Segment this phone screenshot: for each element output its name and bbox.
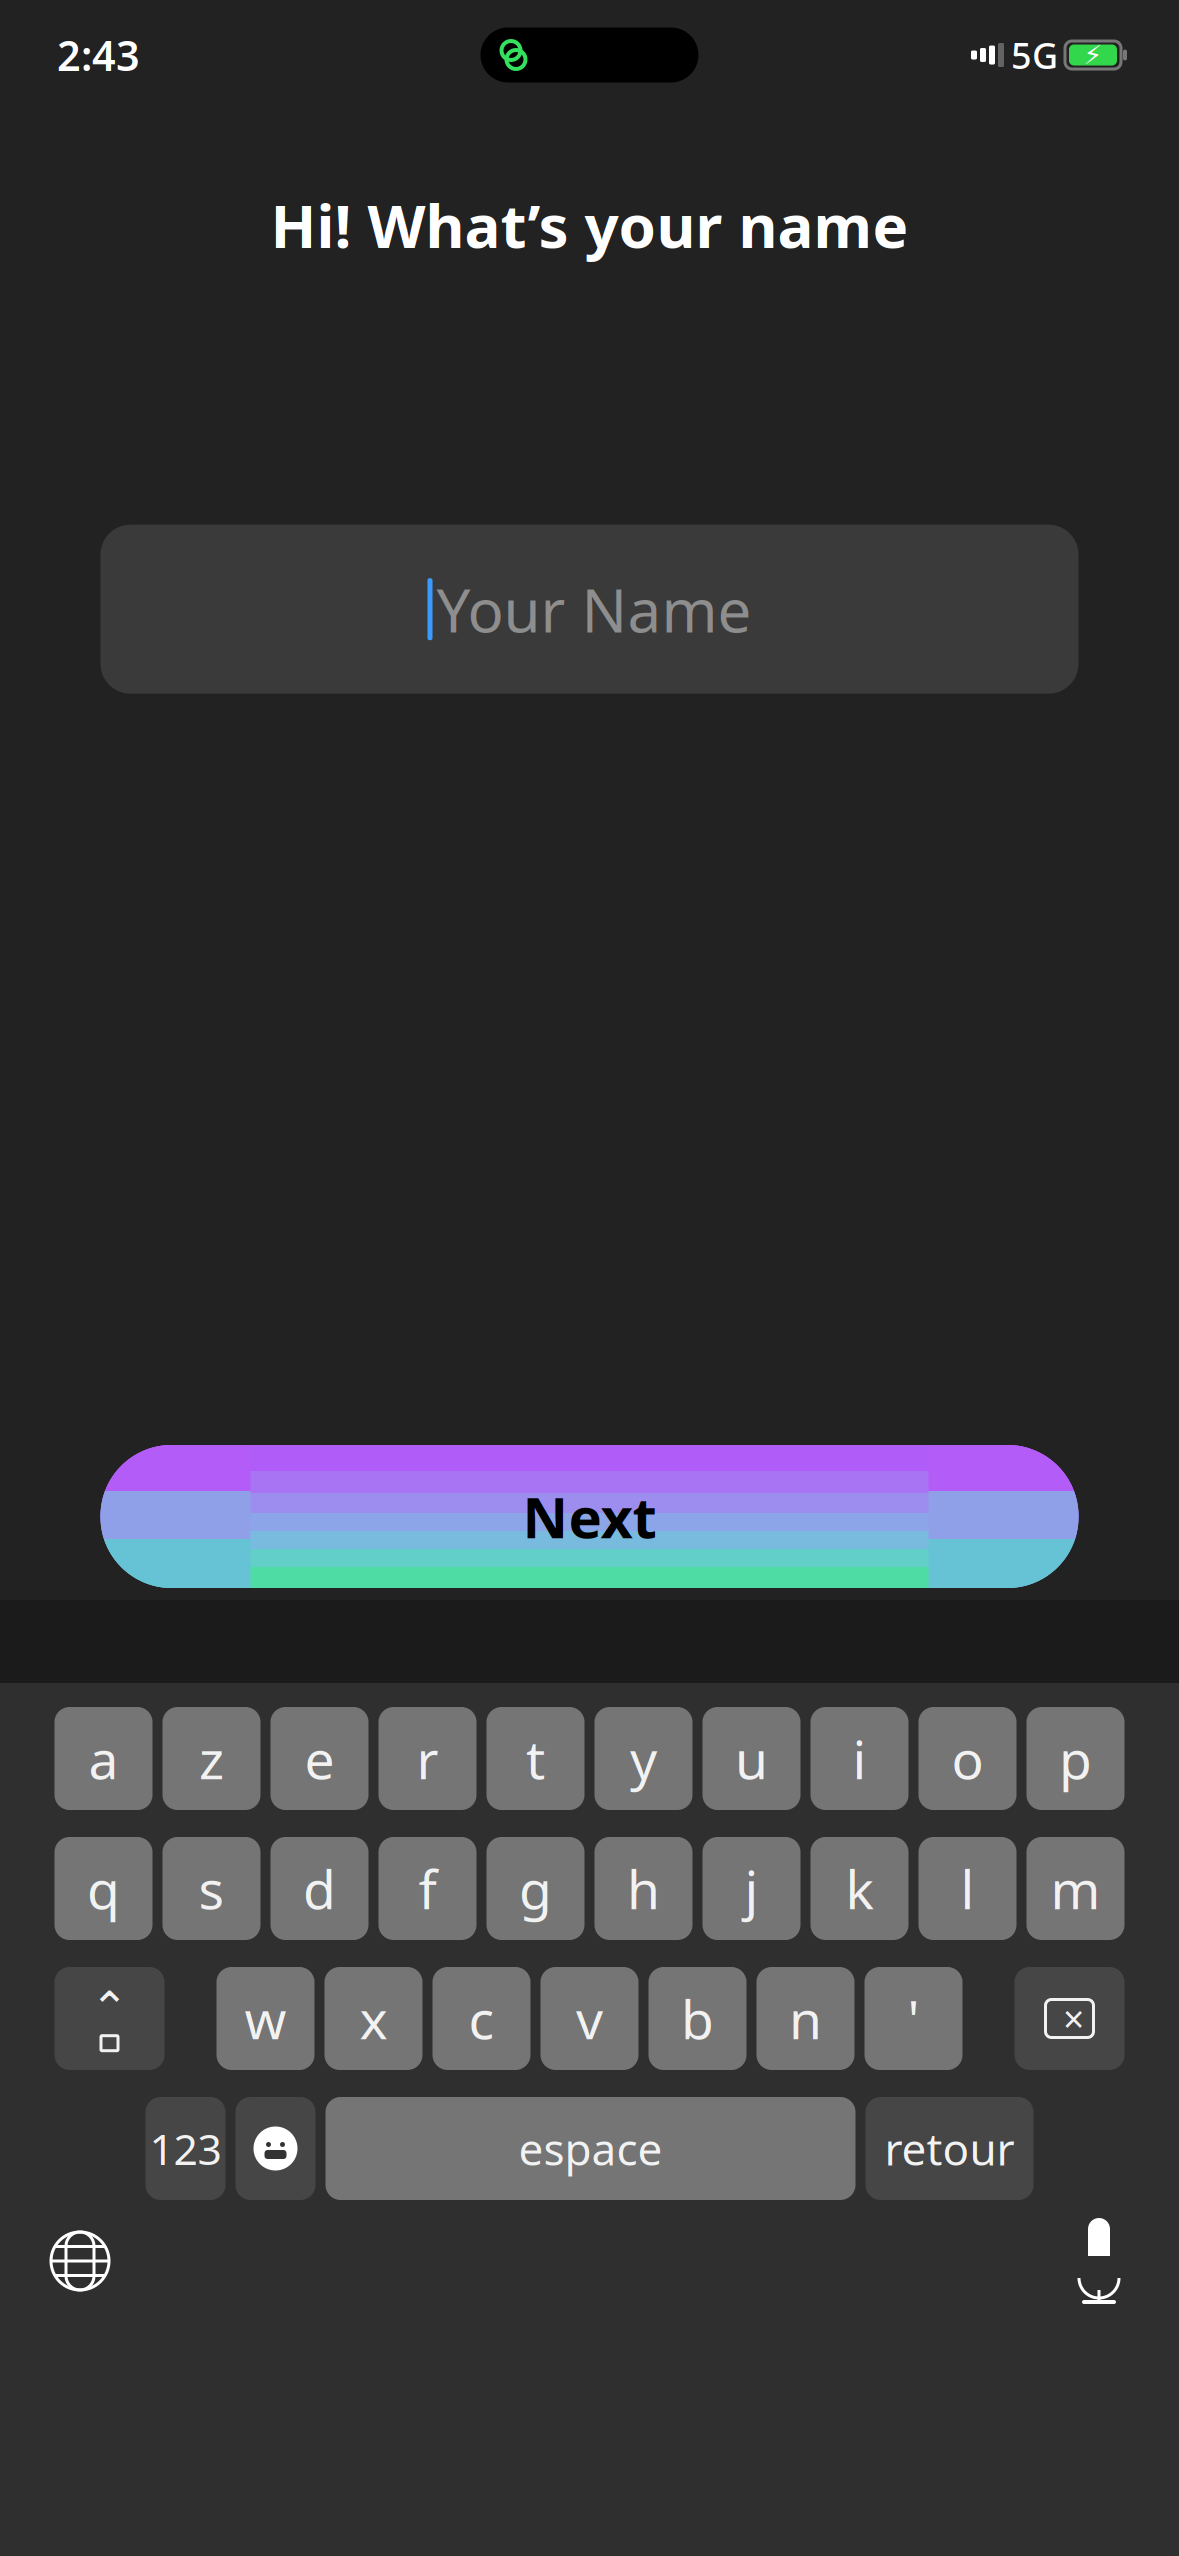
button[interactable]: n: [756, 1967, 854, 2070]
staticText: 2:43: [57, 28, 140, 82]
button[interactable]: t: [486, 1707, 584, 1810]
staticText: i: [852, 1723, 866, 1794]
staticText: retour: [884, 2119, 1014, 2178]
staticText: m: [1050, 1853, 1100, 1924]
button[interactable]: d: [270, 1837, 368, 1940]
staticText: e: [304, 1723, 334, 1794]
button[interactable]: p: [1026, 1707, 1124, 1810]
button[interactable]: z: [162, 1707, 260, 1810]
button[interactable]: l: [918, 1837, 1016, 1940]
button[interactable]: c: [432, 1967, 530, 2070]
staticText: t: [526, 1723, 545, 1794]
staticText: Hi! What’s your name: [270, 185, 908, 265]
staticText: espace: [518, 2119, 662, 2178]
button[interactable]: m: [1026, 1837, 1124, 1940]
button[interactable]: y: [594, 1707, 692, 1810]
button[interactable]: i: [810, 1707, 908, 1810]
button[interactable]: r: [378, 1707, 476, 1810]
staticText: p: [1059, 1723, 1092, 1794]
button[interactable]: h: [594, 1837, 692, 1940]
button[interactable]: f: [378, 1837, 476, 1940]
button[interactable]: Next: [100, 1445, 1078, 1588]
button[interactable]: Emoji: [235, 2097, 315, 2200]
staticText: ⚡︎: [1083, 40, 1102, 70]
staticText: 123: [149, 2120, 221, 2177]
button[interactable]: Change keyboard: [20, 2206, 140, 2316]
button[interactable]: a: [54, 1707, 152, 1810]
staticText: y: [630, 1723, 657, 1794]
button[interactable]: 123: [145, 2097, 225, 2200]
staticText: f: [418, 1853, 436, 1924]
button[interactable]: retour: [865, 2097, 1033, 2200]
staticText: Your Name: [436, 569, 751, 649]
staticText: a: [88, 1723, 118, 1794]
button[interactable]: o: [918, 1707, 1016, 1810]
staticText: l: [960, 1853, 974, 1924]
button[interactable]: b: [648, 1967, 746, 2070]
staticText: c: [468, 1983, 494, 2054]
button[interactable]: w: [216, 1967, 314, 2070]
staticText: d: [303, 1853, 336, 1924]
button[interactable]: s: [162, 1837, 260, 1940]
button[interactable]: espace: [325, 2097, 855, 2200]
button[interactable]: j: [702, 1837, 800, 1940]
staticText: u: [735, 1723, 768, 1794]
staticText: x: [359, 1983, 387, 2054]
staticText: r: [416, 1723, 438, 1794]
staticText: ×: [1063, 1994, 1084, 2043]
button[interactable]: Your Name: [100, 525, 1078, 694]
staticText: 5G: [1011, 31, 1058, 79]
staticText: k: [845, 1853, 873, 1924]
button[interactable]: Delete: [1014, 1967, 1124, 2070]
staticText: Next: [522, 1479, 656, 1554]
button[interactable]: e: [270, 1707, 368, 1810]
staticText: b: [681, 1983, 714, 2054]
staticText: j: [744, 1853, 758, 1924]
staticText: n: [789, 1983, 822, 2054]
staticText: w: [244, 1983, 286, 2054]
button[interactable]: Dictate: [1039, 2206, 1159, 2316]
staticText: ⌃: [90, 1982, 128, 2034]
staticText: ': [907, 1983, 919, 2054]
staticText: o: [951, 1723, 983, 1794]
staticText: s: [198, 1853, 224, 1924]
button[interactable]: k: [810, 1837, 908, 1940]
staticText: z: [199, 1723, 224, 1794]
button[interactable]: x: [324, 1967, 422, 2070]
staticText: q: [87, 1853, 120, 1924]
staticText: g: [519, 1853, 552, 1924]
button[interactable]: u: [702, 1707, 800, 1810]
staticText: h: [627, 1853, 660, 1924]
button[interactable]: Shift: [54, 1967, 164, 2070]
button[interactable]: g: [486, 1837, 584, 1940]
button[interactable]: ': [864, 1967, 962, 2070]
button[interactable]: v: [540, 1967, 638, 2070]
staticText: v: [576, 1983, 603, 2054]
button[interactable]: q: [54, 1837, 152, 1940]
